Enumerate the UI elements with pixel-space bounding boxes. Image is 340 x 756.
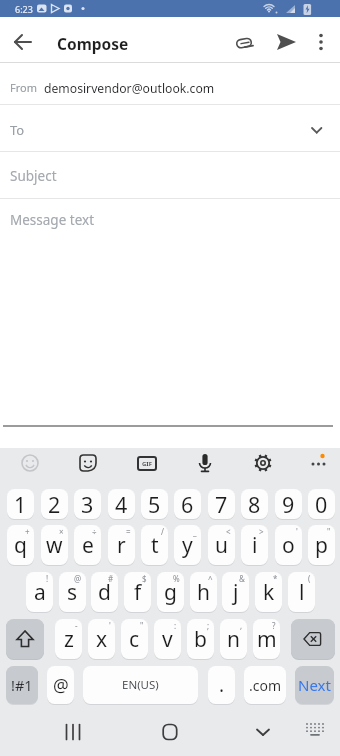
button[interactable]: 9 — [275, 489, 302, 519]
button[interactable] — [74, 449, 102, 477]
button[interactable]: EN(US) — [83, 666, 198, 704]
button[interactable]: l — [288, 572, 315, 612]
staticText: f — [134, 578, 142, 607]
staticText: q — [14, 531, 27, 560]
staticText: ' — [109, 620, 111, 631]
button[interactable]: f — [124, 572, 151, 612]
button[interactable]: p — [308, 525, 335, 565]
button[interactable]: t — [141, 525, 168, 565]
button[interactable] — [6, 619, 44, 659]
staticText: Compose — [57, 33, 129, 54]
button[interactable]: @ — [47, 666, 74, 704]
button[interactable] — [228, 28, 258, 56]
staticText: 5 — [148, 490, 161, 519]
staticText: .com — [249, 676, 282, 695]
button[interactable]: 5 — [141, 489, 168, 519]
button[interactable]: d — [91, 572, 118, 612]
button[interactable] — [0, 63, 340, 104]
staticText: o — [282, 531, 295, 560]
staticText: 6 — [181, 490, 194, 519]
button[interactable]: a — [26, 572, 53, 612]
staticText: z — [64, 625, 74, 654]
button[interactable]: b — [187, 619, 214, 659]
button[interactable]: x — [88, 619, 115, 659]
button[interactable]: m — [253, 619, 280, 659]
button[interactable]: GIF — [137, 456, 157, 471]
staticText: ( — [308, 573, 311, 584]
staticText: , — [240, 620, 243, 631]
staticText: " — [140, 620, 144, 631]
button[interactable]: . — [208, 666, 235, 704]
staticText: 7 — [215, 490, 228, 519]
button[interactable] — [300, 719, 330, 745]
button[interactable]: j — [222, 572, 249, 612]
staticText: " — [327, 526, 331, 537]
staticText: < — [226, 526, 231, 537]
staticText: 6:23 — [15, 3, 33, 15]
button[interactable] — [270, 28, 302, 56]
staticText: u — [215, 531, 228, 560]
button[interactable] — [143, 717, 197, 747]
button[interactable]: !#1 — [6, 666, 38, 704]
button[interactable]: n — [220, 619, 247, 659]
button[interactable]: 2 — [41, 489, 68, 519]
staticText: 0 — [315, 490, 328, 519]
staticText: p — [315, 531, 328, 560]
button[interactable] — [0, 105, 340, 151]
button[interactable]: 1 — [7, 489, 34, 519]
button[interactable]: g — [157, 572, 184, 612]
button[interactable] — [236, 717, 290, 747]
button[interactable] — [46, 717, 100, 747]
button[interactable] — [249, 449, 277, 477]
staticText: $ — [142, 573, 147, 584]
button[interactable]: c — [121, 619, 148, 659]
button[interactable]: 3 — [74, 489, 101, 519]
button[interactable] — [304, 449, 334, 477]
button[interactable]: i — [241, 525, 268, 565]
button[interactable] — [291, 619, 335, 659]
staticText: @ — [74, 573, 82, 584]
staticText: From — [10, 80, 37, 95]
button[interactable] — [16, 449, 44, 477]
button[interactable]: y — [174, 525, 201, 565]
button[interactable]: z — [55, 619, 82, 659]
button[interactable]: 0 — [308, 489, 335, 519]
staticText: Message text — [10, 211, 95, 229]
button[interactable]: r — [108, 525, 135, 565]
staticText: Next — [298, 675, 331, 695]
button[interactable]: 7 — [208, 489, 235, 519]
staticText: 4 — [115, 490, 128, 519]
staticText: j — [233, 578, 239, 607]
button[interactable]: Next — [295, 666, 334, 704]
staticText: To — [10, 121, 25, 139]
staticText: @ — [53, 673, 69, 697]
staticText: 8 — [248, 490, 261, 519]
staticText: & — [239, 573, 245, 584]
button[interactable]: o — [275, 525, 302, 565]
button[interactable]: s — [59, 572, 86, 612]
button[interactable] — [308, 28, 334, 56]
button[interactable] — [0, 152, 340, 198]
button[interactable]: 4 — [108, 489, 135, 519]
button[interactable]: u — [208, 525, 235, 565]
staticText: k — [263, 578, 275, 607]
button[interactable]: w — [41, 525, 68, 565]
button[interactable]: 6 — [174, 489, 201, 519]
staticText: t — [151, 531, 159, 560]
button[interactable]: e — [74, 525, 101, 565]
staticText: b — [194, 625, 207, 654]
button[interactable]: h — [190, 572, 217, 612]
button[interactable]: q — [7, 525, 34, 565]
button[interactable]: 8 — [241, 489, 268, 519]
staticText: !#1 — [11, 675, 33, 695]
staticText: ! — [46, 573, 49, 584]
button[interactable]: v — [154, 619, 181, 659]
staticText: Subject — [10, 167, 57, 185]
button[interactable] — [191, 449, 219, 477]
button[interactable] — [6, 28, 40, 56]
button[interactable]: k — [255, 572, 282, 612]
button[interactable]: .com — [244, 666, 286, 704]
staticText: > — [259, 526, 264, 537]
staticText: EN(US) — [122, 677, 159, 693]
staticText: 1 — [14, 490, 27, 519]
